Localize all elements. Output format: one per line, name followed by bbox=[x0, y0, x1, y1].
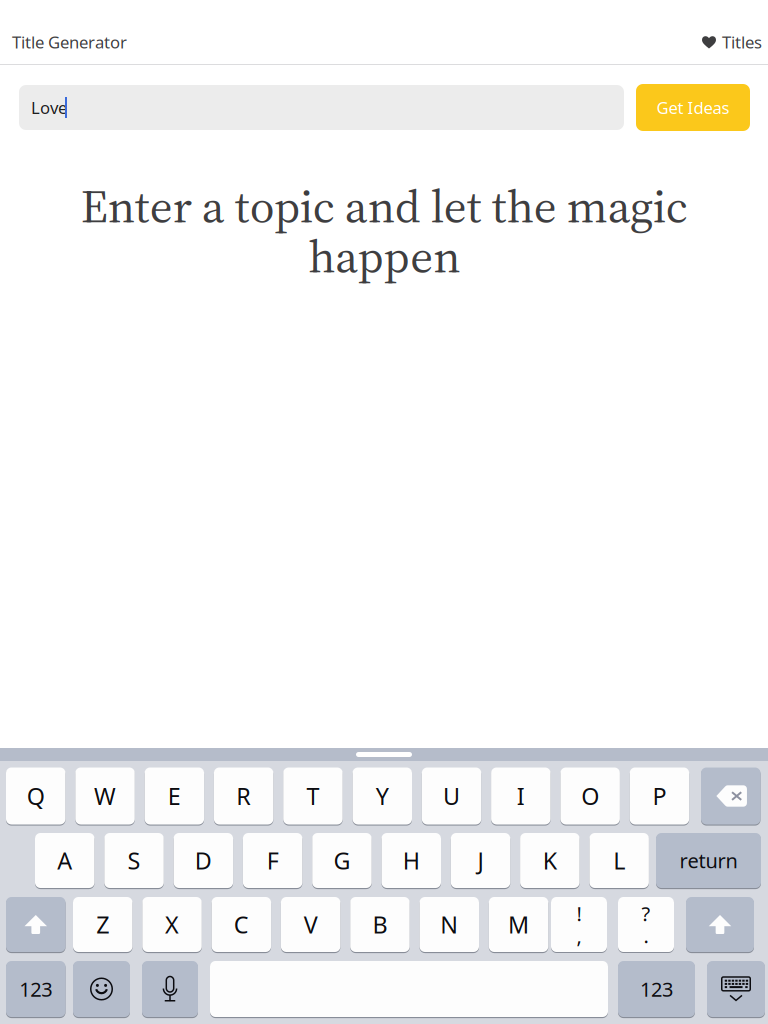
button[interactable]: Hide keyboard bbox=[707, 961, 765, 1017]
button[interactable]: ? . bbox=[618, 897, 674, 952]
button[interactable]: E bbox=[145, 767, 204, 824]
button[interactable]: Shift bbox=[686, 897, 754, 952]
button[interactable]: ! , bbox=[551, 897, 607, 952]
staticText: T bbox=[306, 780, 319, 812]
staticText: F bbox=[267, 845, 279, 876]
staticText: I bbox=[517, 780, 525, 812]
staticText: N bbox=[440, 909, 458, 940]
button[interactable]: Dictate bbox=[142, 961, 198, 1017]
staticText: Get Ideas bbox=[656, 96, 729, 119]
staticText: Title Generator bbox=[12, 31, 127, 53]
button[interactable]: Emoji bbox=[73, 961, 130, 1017]
button[interactable]: F bbox=[243, 833, 302, 888]
button[interactable]: R bbox=[214, 767, 273, 824]
button[interactable]: Titles bbox=[640, 30, 762, 54]
staticText: Y bbox=[376, 780, 389, 812]
button[interactable]: Numbers bbox=[6, 961, 65, 1017]
staticText: ! bbox=[576, 900, 581, 927]
button[interactable]: J bbox=[451, 833, 510, 888]
staticText: U bbox=[443, 780, 460, 812]
button[interactable]: L bbox=[589, 833, 649, 888]
staticText: O bbox=[581, 780, 599, 812]
button[interactable]: P bbox=[630, 767, 689, 824]
staticText: Enter a topic and let the magic happen bbox=[80, 181, 687, 281]
button[interactable]: Topic bbox=[19, 85, 624, 130]
staticText: Titles bbox=[722, 31, 762, 53]
staticText: X bbox=[165, 909, 179, 940]
button[interactable]: Return bbox=[656, 833, 761, 888]
button[interactable]: U bbox=[422, 767, 481, 824]
staticText: 123 bbox=[640, 975, 673, 1003]
staticText: V bbox=[304, 909, 318, 940]
staticText: , bbox=[576, 922, 581, 949]
staticText: 123 bbox=[19, 975, 52, 1003]
button[interactable]: Y bbox=[352, 767, 412, 824]
button[interactable]: I bbox=[491, 767, 551, 824]
staticText: H bbox=[403, 845, 420, 876]
button[interactable]: A bbox=[35, 833, 94, 888]
staticText: D bbox=[195, 845, 212, 876]
button[interactable]: K bbox=[520, 833, 580, 888]
button[interactable]: Title Generator bbox=[12, 30, 232, 54]
staticText: Z bbox=[96, 909, 109, 940]
staticText: K bbox=[543, 845, 557, 876]
button[interactable]: G bbox=[312, 833, 372, 888]
button[interactable]: X bbox=[142, 897, 202, 952]
button[interactable]: V bbox=[281, 897, 340, 952]
staticText: L bbox=[613, 845, 625, 876]
button[interactable]: Shift bbox=[6, 897, 65, 952]
button[interactable]: Get Ideas bbox=[636, 84, 750, 131]
staticText: R bbox=[236, 780, 251, 812]
button[interactable]: B bbox=[350, 897, 410, 952]
button[interactable]: C bbox=[212, 897, 271, 952]
staticText: S bbox=[128, 845, 141, 876]
button[interactable]: D bbox=[174, 833, 233, 888]
button[interactable]: S bbox=[104, 833, 164, 888]
button[interactable]: Delete bbox=[701, 767, 760, 824]
staticText: B bbox=[372, 909, 387, 940]
button[interactable]: O bbox=[560, 767, 620, 824]
staticText: . bbox=[643, 922, 648, 949]
staticText: P bbox=[652, 780, 666, 812]
staticText: Q bbox=[27, 780, 45, 812]
button[interactable]: M bbox=[489, 897, 548, 952]
staticText: W bbox=[94, 780, 116, 812]
button[interactable]: Q bbox=[6, 767, 65, 824]
staticText: ? bbox=[641, 900, 650, 927]
staticText: E bbox=[168, 780, 181, 812]
button[interactable]: W bbox=[75, 767, 135, 824]
staticText: G bbox=[333, 845, 350, 876]
staticText: Love bbox=[31, 96, 67, 119]
button[interactable]: H bbox=[381, 833, 441, 888]
staticText: return bbox=[679, 847, 737, 874]
staticText: M bbox=[508, 909, 529, 940]
button[interactable]: Z bbox=[73, 897, 132, 952]
button[interactable]: T bbox=[283, 767, 343, 824]
button[interactable]: Numbers bbox=[618, 961, 695, 1017]
staticText: A bbox=[57, 845, 72, 876]
button[interactable]: N bbox=[419, 897, 479, 952]
staticText: C bbox=[234, 909, 249, 940]
staticText: J bbox=[477, 845, 483, 876]
